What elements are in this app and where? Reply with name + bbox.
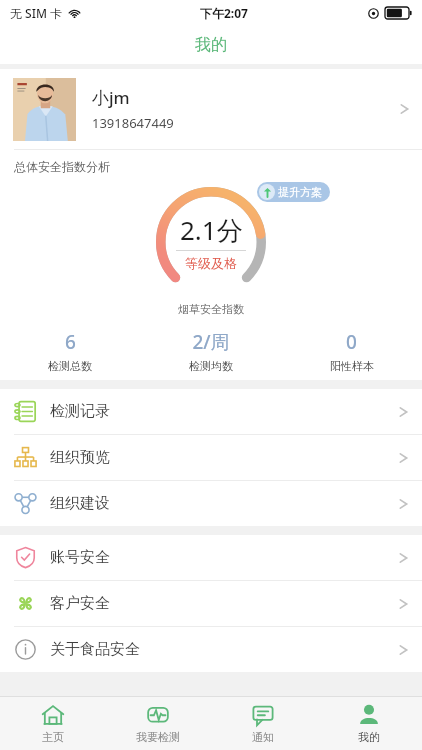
staticText: 下午2:07 <box>200 5 248 21</box>
staticText: 提升方案 <box>278 185 322 199</box>
button[interactable]: 通知 <box>210 697 316 750</box>
staticText: 烟草安全指数 <box>178 302 244 316</box>
staticText: 13918647449 <box>92 114 174 132</box>
other: 我要检测 <box>146 703 170 727</box>
staticText: 等级及格 <box>185 255 237 271</box>
staticText: 我的 <box>195 35 227 55</box>
staticText: 主页 <box>42 730 64 744</box>
button[interactable]: 账号安全 <box>0 535 422 580</box>
staticText: 阳性样本 <box>330 359 374 373</box>
staticText: 2/周 <box>192 329 230 355</box>
staticText: 检测总数 <box>48 359 92 373</box>
staticText: 0 <box>346 329 357 355</box>
button[interactable]: 提升方案 <box>257 182 330 202</box>
staticText: 账号安全 <box>50 548 110 567</box>
staticText: 检测均数 <box>189 359 233 373</box>
staticText: 检测记录 <box>50 402 110 421</box>
button[interactable]: 我的 <box>316 697 422 750</box>
staticText: 我要检测 <box>136 730 180 744</box>
button[interactable]: 我要检测 <box>105 697 210 750</box>
staticText: 2.1分 <box>180 212 243 248</box>
other: 主页 <box>41 703 65 727</box>
staticText: 总体安全指数分析 <box>14 159 110 174</box>
button[interactable]: 检测记录 <box>0 389 422 434</box>
staticText: 组织建设 <box>50 494 110 513</box>
staticText: 6 <box>65 329 76 355</box>
other: 我的 <box>357 703 381 727</box>
button[interactable]: 关于食品安全 <box>0 627 422 672</box>
button[interactable]: 客户安全 <box>0 581 422 626</box>
button[interactable]: 组织建设 <box>0 481 422 526</box>
button[interactable]: 主页 <box>0 697 105 750</box>
staticText: 小jm <box>92 86 130 109</box>
staticText: 关于食品安全 <box>50 640 140 659</box>
staticText: 通知 <box>252 730 274 744</box>
staticText: 我的 <box>358 730 380 744</box>
button[interactable]: 组织预览 <box>0 435 422 480</box>
button[interactable]: 小jm <box>0 69 422 149</box>
staticText: 无 SIM 卡 <box>10 5 63 21</box>
other: 通知 <box>251 703 275 727</box>
staticText: 组织预览 <box>50 448 110 467</box>
staticText: 客户安全 <box>50 594 110 613</box>
